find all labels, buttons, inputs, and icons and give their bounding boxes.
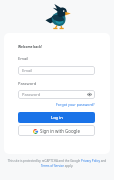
button[interactable]: Sign in with Google <box>18 125 95 136</box>
staticText: Email <box>22 68 33 73</box>
button[interactable]: Forgot your password? <box>56 102 95 107</box>
staticText: Log in <box>51 115 63 120</box>
button[interactable]: Log in <box>18 112 95 123</box>
button[interactable]: Show password <box>87 92 92 97</box>
staticText: Sign in with Google <box>40 128 80 134</box>
staticText: This site is protected by reCAPTCHA and … <box>4 159 110 168</box>
staticText: Forgot your password? <box>56 102 95 107</box>
button[interactable]: Email <box>18 66 95 75</box>
staticText: Password <box>18 81 37 86</box>
button[interactable]: Password <box>18 90 95 99</box>
staticText: Email <box>18 56 29 61</box>
staticText: Welcome back! <box>18 45 42 49</box>
staticText: Password <box>22 92 41 97</box>
